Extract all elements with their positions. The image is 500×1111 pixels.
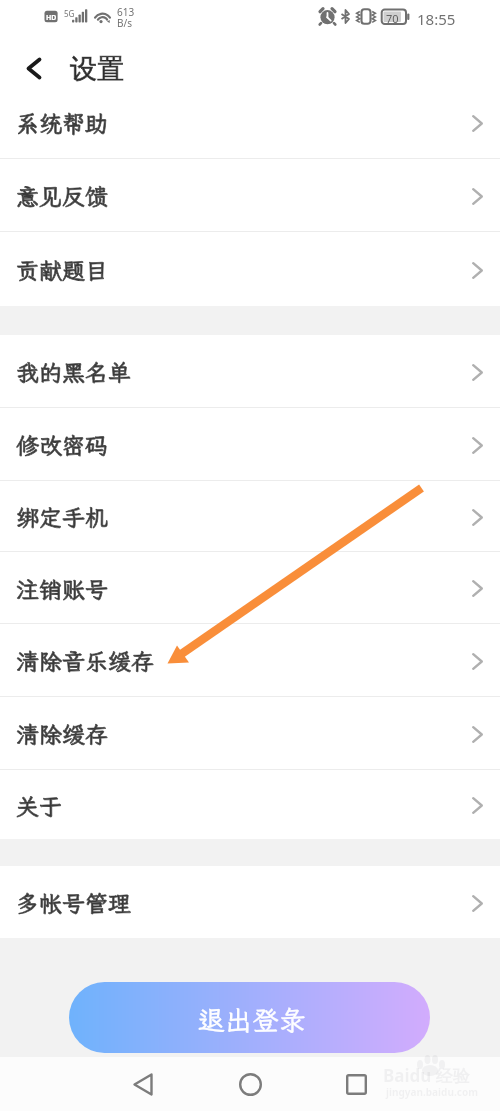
button[interactable]: 意见反馈 — [0, 159, 500, 231]
button[interactable]: 清除音乐缓存 — [0, 624, 500, 696]
button[interactable]: 多帐号管理 — [0, 866, 500, 938]
button[interactable]: 我的黑名单 — [0, 335, 500, 407]
staticText: 贡献题目 — [16, 255, 108, 285]
staticText: 意见反馈 — [16, 181, 108, 211]
button[interactable]: 最近任务 — [330, 1058, 382, 1110]
staticText: 关于 — [16, 791, 62, 821]
staticText: 我的黑名单 — [16, 357, 131, 387]
staticText: 关于 — [16, 791, 62, 821]
button[interactable]: 清除缓存 — [0, 697, 500, 769]
staticText: 意见反馈 — [16, 181, 108, 211]
staticText: 设置 — [70, 52, 124, 86]
staticText: Baidu 经验 — [383, 1064, 470, 1087]
staticText: 清除音乐缓存 — [16, 646, 154, 676]
staticText: 我的黑名单 — [16, 357, 131, 387]
staticText: 18:55 — [417, 9, 456, 29]
staticText: 清除缓存 — [16, 719, 108, 749]
staticText: 绑定手机 — [16, 502, 108, 532]
staticText: 清除缓存 — [16, 719, 108, 749]
staticText: 5G — [64, 8, 75, 19]
staticText: HD — [46, 13, 57, 23]
button[interactable]: 贡献题目 — [0, 232, 500, 306]
button[interactable]: 系统帮助 — [0, 86, 500, 158]
staticText: 贡献题目 — [16, 255, 108, 285]
staticText: 注销账号 — [16, 574, 108, 604]
staticText: jingyan.baidu.com — [386, 1085, 478, 1099]
staticText: 注销账号 — [16, 574, 108, 604]
button[interactable]: 返回 — [16, 50, 52, 86]
staticText: 系统帮助 — [16, 108, 108, 138]
staticText: 多帐号管理 — [16, 888, 131, 918]
staticText: 多帐号管理 — [16, 888, 131, 918]
staticText: 70 — [386, 11, 399, 26]
staticText: 修改密码 — [16, 430, 108, 460]
button[interactable]: 绑定手机 — [0, 481, 500, 551]
button[interactable]: 注销账号 — [0, 552, 500, 623]
button[interactable]: 主页 — [224, 1058, 276, 1110]
staticText: 系统帮助 — [16, 108, 108, 138]
staticText: 设置 — [70, 52, 124, 86]
staticText: 清除音乐缓存 — [16, 646, 154, 676]
staticText: 退出登录 — [198, 1002, 306, 1038]
staticText: 修改密码 — [16, 430, 108, 460]
staticText: 613 B/s — [117, 5, 135, 30]
button[interactable]: 修改密码 — [0, 408, 500, 480]
button[interactable]: 关于 — [0, 770, 500, 839]
button[interactable]: 退出登录 — [69, 982, 430, 1053]
button[interactable]: 返回 — [117, 1058, 169, 1110]
staticText: 绑定手机 — [16, 502, 108, 532]
